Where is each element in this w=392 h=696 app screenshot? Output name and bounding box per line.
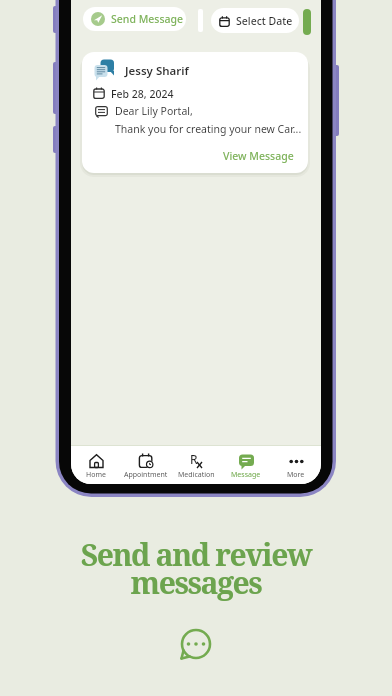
staticText: Send Message (111, 12, 184, 26)
button[interactable]: Jessy Sharif (82, 52, 308, 173)
staticText: Send and review messages (0, 534, 392, 603)
staticText: Home (86, 470, 106, 480)
button[interactable]: Send Message (83, 7, 186, 31)
button[interactable] (303, 9, 311, 35)
staticText: R (190, 451, 198, 467)
staticText: Message (231, 470, 261, 480)
staticText: More (287, 470, 305, 480)
button[interactable]: Home (71, 446, 121, 484)
staticText: Dear Lily Portal, (115, 104, 193, 118)
staticText: Appointment (124, 470, 168, 480)
button[interactable]: Select Date (211, 8, 299, 33)
button[interactable]: View Message (223, 149, 294, 163)
staticText: Jessy Sharif (125, 63, 189, 79)
staticText: Select Date (236, 14, 293, 28)
button[interactable]: More (271, 446, 321, 484)
staticText: Thank you for creating your new Car... (115, 122, 302, 136)
button[interactable]: R (171, 446, 221, 484)
button[interactable]: Message (221, 446, 271, 484)
staticText: Medication (178, 470, 215, 480)
staticText: Feb 28, 2024 (111, 87, 174, 101)
button[interactable]: Appointment (121, 446, 171, 484)
